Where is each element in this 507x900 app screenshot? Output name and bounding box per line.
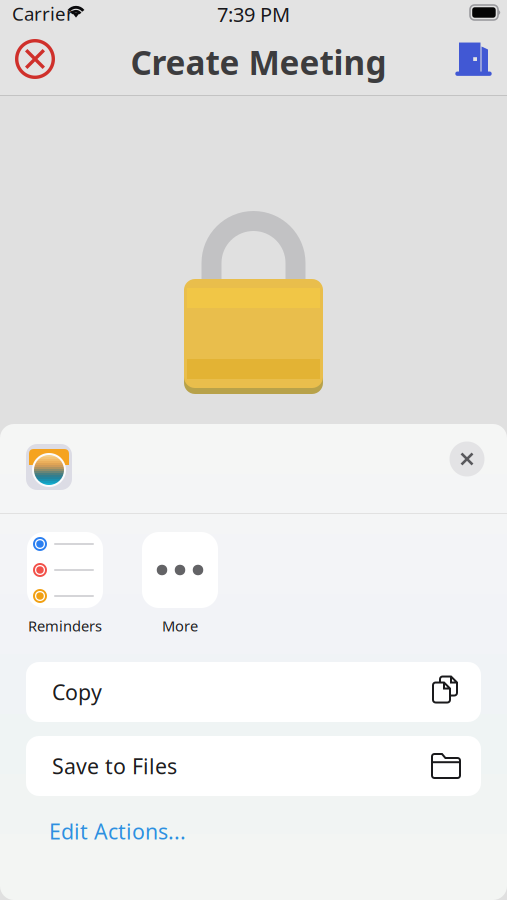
button[interactable]: Save to Files [26, 736, 481, 796]
button[interactable]: Reminders [13, 532, 117, 635]
staticText: Edit Actions... [49, 817, 186, 845]
staticText: Carrier [12, 1, 74, 26]
button[interactable]: Close [8, 32, 62, 86]
button[interactable]: More [128, 532, 232, 635]
staticText: Copy [52, 678, 102, 706]
staticText: Reminders [28, 616, 102, 635]
button[interactable]: Edit Actions... [47, 808, 188, 854]
staticText: More [162, 616, 198, 635]
button[interactable]: Leave meeting [446, 32, 500, 86]
staticText: 7:39 PM [217, 1, 290, 28]
staticText: Save to Files [52, 752, 177, 780]
button[interactable]: Close share sheet [443, 435, 491, 483]
button[interactable]: Copy [26, 662, 481, 722]
staticText: Create Meeting [130, 40, 386, 84]
